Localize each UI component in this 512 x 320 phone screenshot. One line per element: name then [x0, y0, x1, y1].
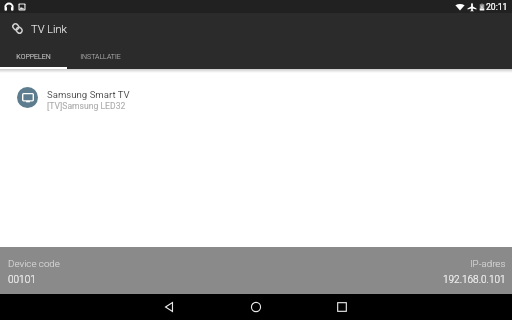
- button[interactable]: TV Link: [12, 23, 23, 34]
- button[interactable]: Samsung Smart TV: [0, 75, 512, 119]
- staticText: Device code: [8, 258, 60, 269]
- staticText: Samsung Smart TV: [47, 89, 130, 100]
- button[interactable]: INSTALLATIE: [67, 43, 134, 69]
- staticText: INSTALLATIE: [80, 53, 121, 61]
- staticText: [TV]Samsung LED32: [47, 101, 126, 111]
- staticText: TV Link: [31, 23, 67, 36]
- button[interactable]: Recents: [329, 294, 355, 320]
- staticText: 00101: [8, 274, 36, 286]
- button[interactable]: Home: [243, 294, 269, 320]
- button[interactable]: KOPPELEN: [0, 43, 67, 69]
- staticText: IP-adres: [470, 258, 506, 269]
- button[interactable]: Back: [156, 294, 182, 320]
- staticText: 192.168.0.101: [443, 274, 506, 286]
- staticText: 20:11: [486, 2, 508, 12]
- staticText: KOPPELEN: [16, 53, 51, 61]
